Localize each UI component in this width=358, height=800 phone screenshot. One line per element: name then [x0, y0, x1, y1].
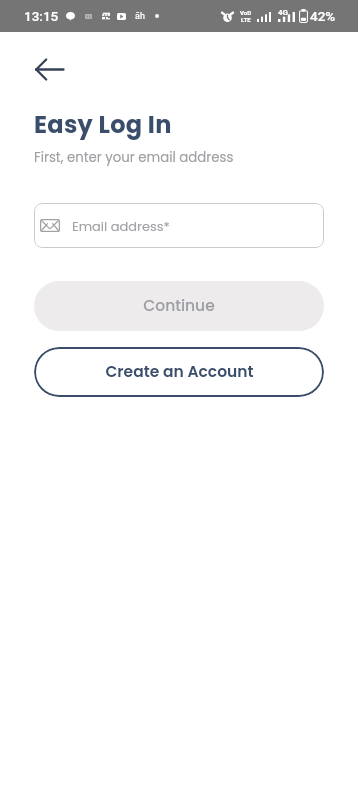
button[interactable]: Continue: [34, 281, 324, 331]
button[interactable]: Back: [26, 49, 72, 89]
staticText: Email address*: [72, 217, 170, 235]
staticText: VoD: [240, 9, 252, 16]
staticText: Continue: [143, 295, 215, 317]
button[interactable]: Email address*: [34, 203, 324, 248]
staticText: 13:15: [24, 8, 59, 24]
button[interactable]: Create an Account: [34, 347, 324, 397]
staticText: 4G: [278, 8, 289, 17]
staticText: 42%: [310, 8, 336, 24]
staticText: LTE: [241, 16, 251, 23]
staticText: First, enter your email address: [34, 148, 234, 167]
staticText: Easy Log In: [34, 108, 172, 142]
staticText: āh: [135, 11, 145, 22]
staticText: Create an Account: [105, 361, 254, 383]
